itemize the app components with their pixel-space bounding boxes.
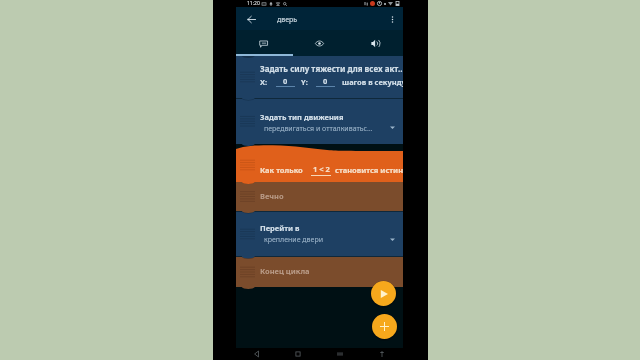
button[interactable]: Конец цикла (236, 257, 403, 287)
staticText: Y: (301, 77, 308, 87)
staticText: Конец цикла (260, 266, 310, 276)
staticText: X: (260, 77, 268, 87)
button[interactable]: Back (236, 348, 277, 360)
staticText: шагов в секунду (342, 77, 403, 87)
button[interactable]: Back (242, 10, 260, 28)
staticText: дверь (277, 15, 298, 25)
button[interactable]: More options (383, 10, 401, 28)
staticText: 0 (283, 76, 288, 86)
staticText: передвигаться и отталкиватьс… (264, 124, 373, 134)
button[interactable]: Keyboard (361, 348, 403, 360)
staticText: 11:20 (247, 0, 260, 7)
button[interactable]: Перейти в (236, 212, 403, 257)
button[interactable]: Как только (236, 151, 403, 182)
staticText: Вечно (260, 191, 284, 201)
staticText: 0 (323, 76, 328, 86)
button[interactable]: Задать тип движения (236, 99, 403, 145)
button[interactable]: Play (371, 281, 396, 306)
staticText: Задать тип движения (260, 112, 344, 122)
staticText: становится истин (335, 165, 403, 175)
staticText: Перейти в (260, 223, 300, 233)
button[interactable]: Code (236, 30, 291, 56)
staticText: 1 < 2 (313, 164, 330, 174)
button[interactable]: Sounds (347, 30, 403, 56)
button[interactable]: Задать силу тяжести для всех акт… (236, 56, 403, 98)
button[interactable]: Recents (319, 348, 361, 360)
staticText: Как только (260, 165, 303, 175)
staticText: крепление двери (264, 235, 324, 245)
button[interactable]: Add (372, 314, 397, 339)
button[interactable]: Stage (291, 30, 347, 56)
button[interactable]: Home (277, 348, 319, 360)
staticText: Задать силу тяжести для всех акт… (260, 63, 403, 74)
button[interactable]: Вечно (236, 182, 403, 211)
